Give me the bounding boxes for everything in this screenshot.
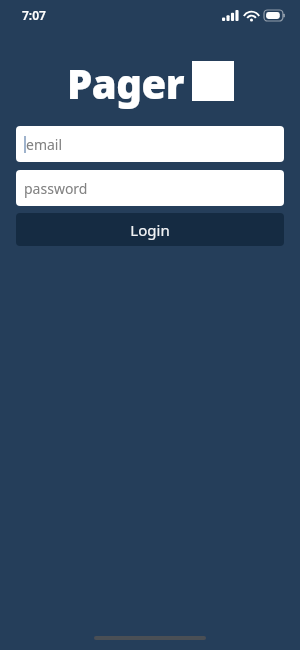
button[interactable]: email [16,126,284,162]
button[interactable]: Login [16,213,284,246]
staticText: Pager [67,56,184,110]
staticText: password [24,179,88,198]
other: Battery [264,10,286,21]
staticText: 7:07 [22,7,46,23]
button[interactable]: password [16,170,284,206]
staticText: email [26,135,63,154]
other: Wi-Fi [244,10,259,21]
other: Cellular signal [222,10,239,21]
staticText: Login [130,220,170,240]
